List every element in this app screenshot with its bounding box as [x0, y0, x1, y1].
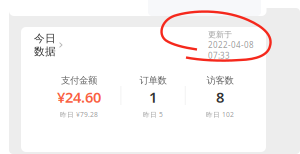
staticText: 昨日 ¥79.28 — [60, 110, 98, 119]
staticText: 支付金额 — [61, 75, 97, 86]
staticText: 昨日 102 — [206, 110, 234, 119]
staticText: 访客数 — [206, 75, 233, 86]
staticText: 8 — [216, 87, 224, 107]
staticText: 1 — [149, 87, 157, 107]
staticText: 订单数 — [139, 75, 166, 86]
staticText: 今日数据 — [34, 32, 56, 58]
staticText: ¥24.60 — [57, 87, 101, 107]
staticText: 昨日 5 — [143, 110, 163, 119]
staticText: 更新于 2022-04-08 07:33 — [208, 29, 254, 61]
button[interactable]: 今日数据 — [0, 0, 300, 154]
